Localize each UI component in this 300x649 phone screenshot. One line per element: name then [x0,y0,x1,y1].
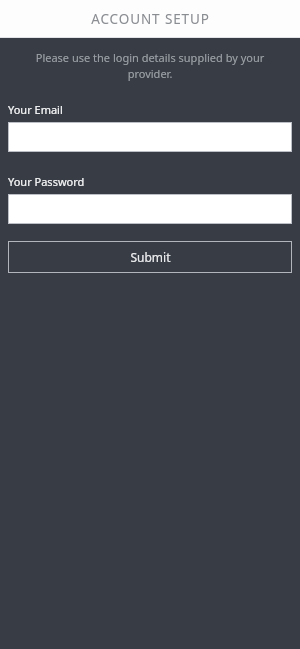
button[interactable]: Your Password input [8,194,292,224]
staticText: Your Email [8,102,63,117]
button[interactable]: Submit [8,241,292,273]
staticText: Submit [130,249,171,265]
staticText: ACCOUNT SETUP [91,10,210,28]
staticText: Please use the login details supplied by… [24,50,276,82]
staticText: Your Password [8,174,85,189]
button[interactable]: Your Email input [8,122,292,152]
